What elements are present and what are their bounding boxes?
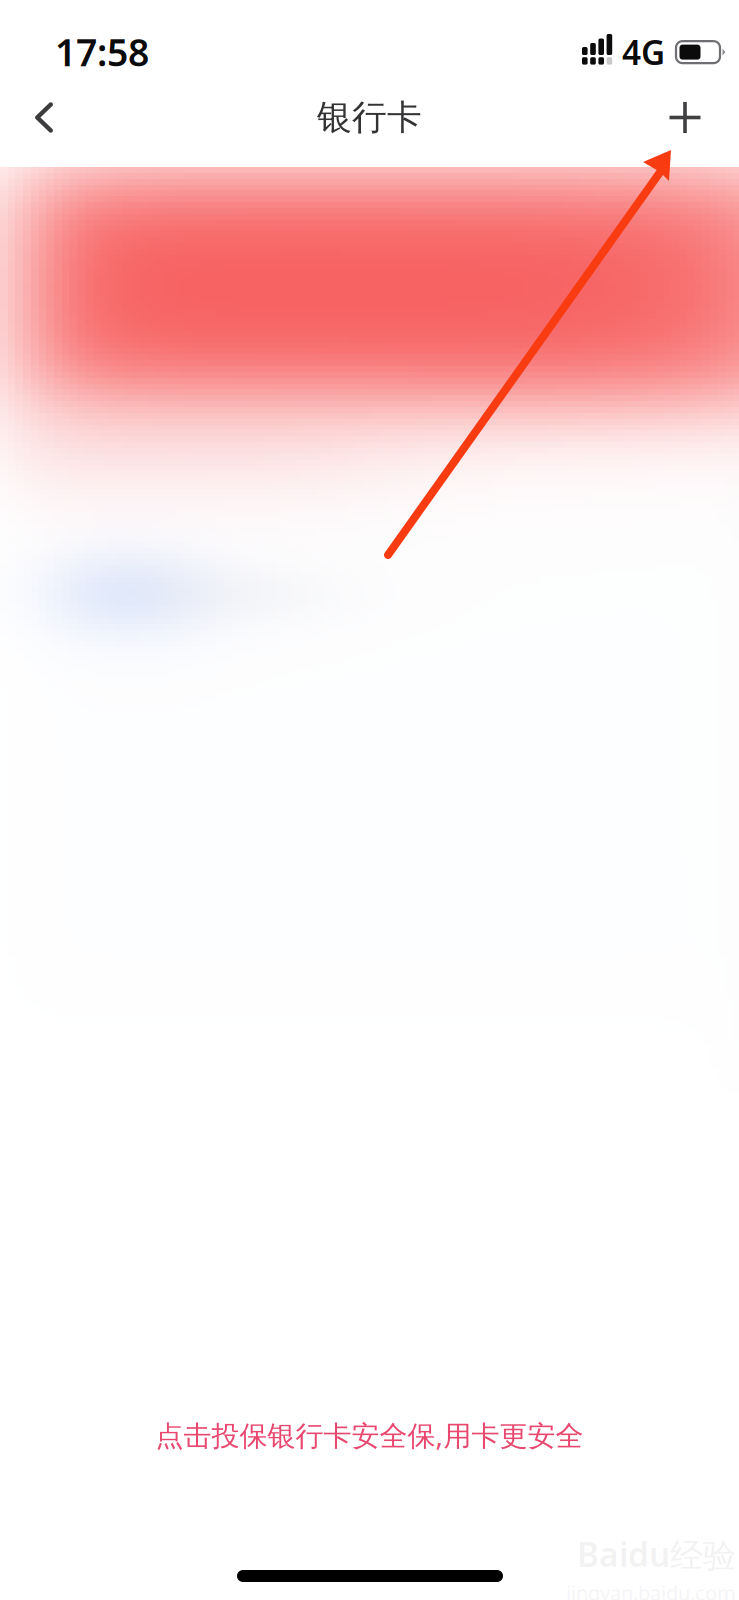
staticText: 银行卡 bbox=[317, 96, 422, 139]
button[interactable]: 点击投保银行卡安全保,用卡更安全 bbox=[0, 1412, 739, 1458]
button[interactable]: Add bank card bbox=[643, 88, 721, 167]
staticText: 4G bbox=[622, 30, 665, 74]
staticText: jingyan.baidu.com bbox=[566, 1579, 736, 1600]
staticText: Baidu经验 bbox=[577, 1532, 736, 1576]
staticText: 17:58 bbox=[55, 27, 149, 77]
button[interactable]: Back bbox=[0, 88, 78, 167]
staticText: 点击投保银行卡安全保,用卡更安全 bbox=[155, 1416, 583, 1454]
